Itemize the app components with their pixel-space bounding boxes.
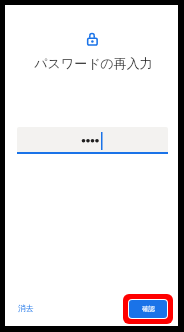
- other: Locked: [85, 30, 101, 48]
- button[interactable]: Password entry field: [17, 127, 168, 152]
- staticText: 消去: [18, 303, 34, 313]
- staticText: パスワードの再入力: [34, 55, 153, 71]
- staticText: 確認: [142, 305, 155, 313]
- button[interactable]: 確認: [129, 300, 167, 318]
- button[interactable]: 消去: [14, 300, 38, 316]
